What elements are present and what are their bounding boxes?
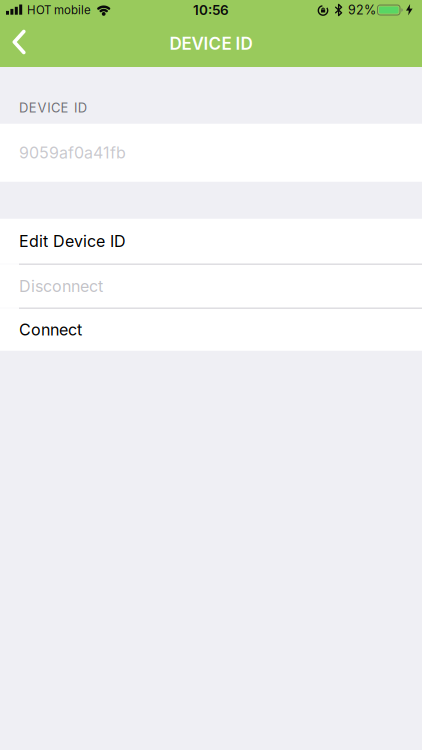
staticText: Disconnect <box>19 276 103 296</box>
staticText: DEVICE ID <box>169 33 252 54</box>
staticText: 9059af0a41fb <box>19 143 126 162</box>
staticText: HOT mobile <box>27 3 91 17</box>
staticText: 92% <box>348 2 376 17</box>
button[interactable]: 9059af0a41fb <box>0 124 422 182</box>
staticText: DEVICE ID <box>19 100 87 116</box>
staticText: Edit Device ID <box>19 231 126 251</box>
button[interactable]: Edit Device ID <box>0 219 422 264</box>
button[interactable]: Disconnect <box>0 265 422 308</box>
button[interactable]: Connect <box>0 309 422 351</box>
staticText: 10:56 <box>193 2 229 18</box>
staticText: Connect <box>19 320 82 339</box>
button[interactable] <box>0 21 44 65</box>
